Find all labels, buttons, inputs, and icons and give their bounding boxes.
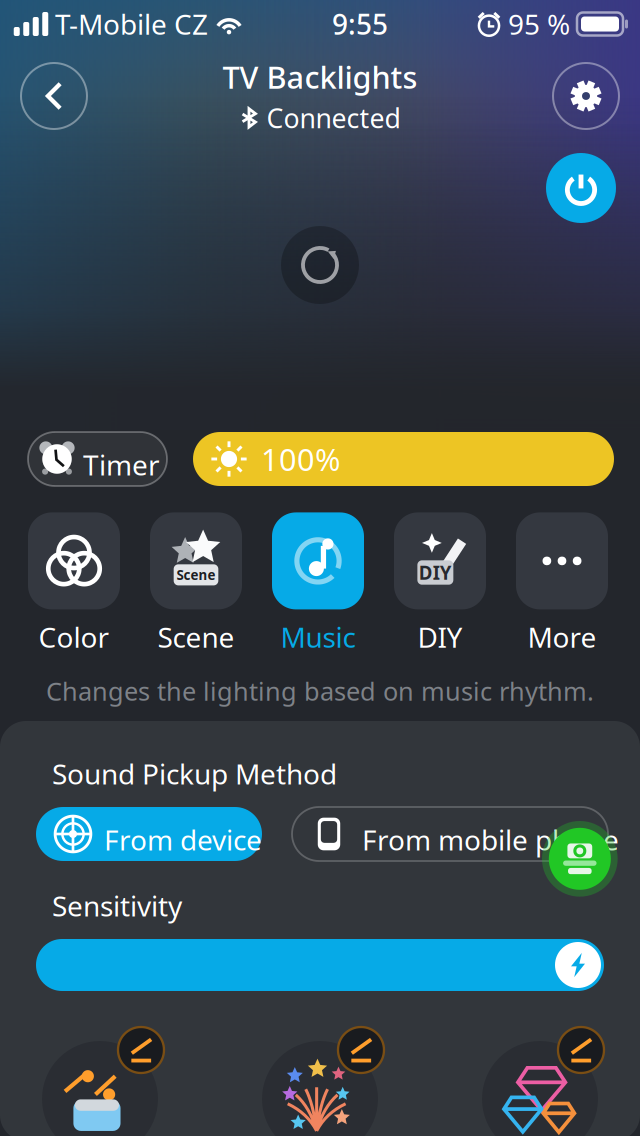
- staticText: Color: [38, 618, 109, 656]
- staticText: 9:55: [332, 5, 388, 43]
- button[interactable]: Color: [28, 514, 120, 654]
- staticText: More: [527, 618, 596, 656]
- button[interactable]: Timer: [28, 432, 167, 486]
- button[interactable]: 100%: [193, 432, 614, 486]
- staticText: Connected: [266, 100, 400, 136]
- staticText: TV Backlights: [222, 56, 417, 97]
- button[interactable]: Settings: [550, 60, 622, 132]
- button[interactable]: Preset: [482, 1027, 612, 1136]
- button[interactable]: Music: [272, 514, 364, 654]
- staticText: DIY: [419, 560, 452, 585]
- button[interactable]: DIY: [394, 514, 486, 654]
- button[interactable]: Back: [18, 60, 90, 132]
- staticText: Scene: [157, 618, 234, 656]
- button[interactable]: Preset: [42, 1027, 172, 1136]
- button[interactable]: Scene: [150, 514, 242, 654]
- button[interactable]: Screen record: [542, 821, 618, 897]
- staticText: Changes the lighting based on music rhyt…: [46, 674, 594, 708]
- button[interactable]: More: [516, 514, 608, 654]
- button[interactable]: Preset: [262, 1027, 392, 1136]
- staticText: From mobile phone: [362, 821, 619, 858]
- staticText: Sound Pickup Method: [52, 755, 337, 792]
- staticText: From device: [104, 821, 262, 858]
- staticText: DIY: [417, 618, 462, 656]
- staticText: T-Mobile CZ: [48, 5, 215, 43]
- staticText: Sensitivity: [52, 887, 182, 924]
- staticText: 95 %: [501, 5, 577, 43]
- staticText: Timer: [83, 446, 160, 483]
- staticText: Scene: [176, 566, 215, 584]
- staticText: 100%: [261, 439, 340, 479]
- button[interactable]: Power: [546, 153, 616, 223]
- button[interactable]: From device: [36, 807, 262, 861]
- staticText: Music: [280, 618, 355, 656]
- button[interactable]: From mobile phone: [292, 807, 608, 861]
